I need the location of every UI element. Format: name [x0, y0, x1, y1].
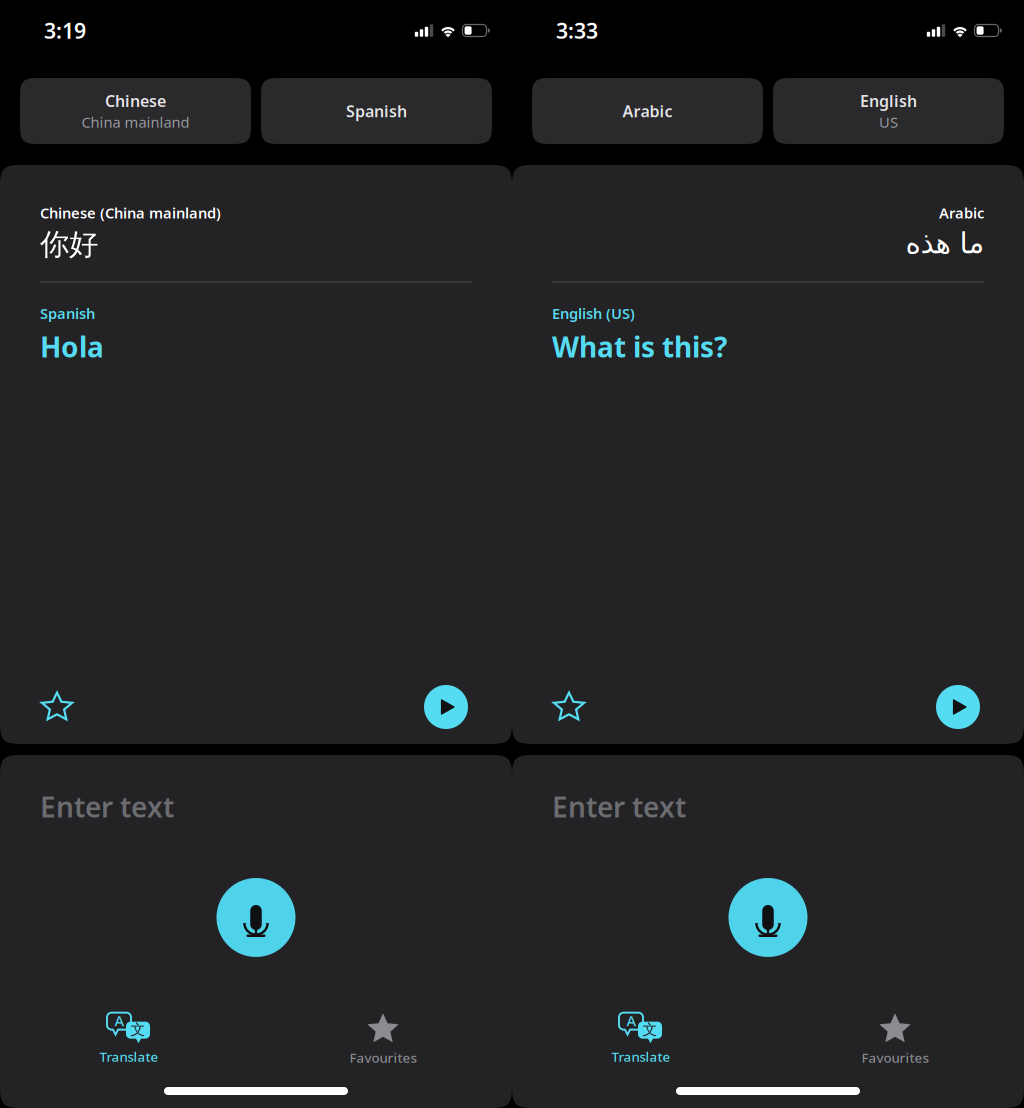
staticText: Spanish: [346, 100, 407, 122]
staticText: Favourites: [861, 1049, 928, 1066]
staticText: What is this?: [552, 328, 727, 365]
staticText: A: [626, 1011, 636, 1030]
staticText: Translate: [99, 1048, 158, 1065]
button[interactable]: Favourite: [31, 681, 83, 733]
button[interactable]: Enter text: [512, 757, 1024, 837]
button[interactable]: Enter text: [0, 757, 512, 837]
staticText: 3:19: [44, 16, 86, 45]
button[interactable]: A: [2, 1013, 256, 1065]
button[interactable]: A: [514, 1013, 768, 1065]
staticText: Spanish: [40, 303, 95, 323]
staticText: Enter text: [40, 788, 174, 825]
button[interactable]: Arabic: [532, 78, 763, 144]
button[interactable]: Play: [932, 681, 984, 733]
button[interactable]: Spanish: [261, 78, 492, 144]
staticText: Favourites: [349, 1049, 416, 1066]
staticText: Enter text: [552, 788, 686, 825]
staticText: Hola: [40, 328, 104, 365]
staticText: 文: [642, 1021, 657, 1039]
staticText: Chinese: [105, 90, 166, 111]
button[interactable]: Play: [420, 681, 472, 733]
staticText: A: [114, 1011, 124, 1030]
staticText: China mainland: [81, 112, 189, 132]
button[interactable]: Favourite: [543, 681, 595, 733]
staticText: English: [860, 90, 917, 111]
button[interactable]: English: [773, 78, 1004, 144]
staticText: English (US): [552, 303, 635, 323]
button[interactable]: Dictate: [216, 878, 295, 957]
staticText: US: [879, 112, 898, 132]
staticText: Translate: [611, 1048, 670, 1065]
staticText: 文: [130, 1021, 145, 1039]
button[interactable]: Favourites: [768, 1012, 1022, 1066]
staticText: ما هذه: [905, 226, 984, 260]
button[interactable]: Favourites: [256, 1012, 510, 1066]
staticText: Arabic: [622, 100, 672, 122]
button[interactable]: Dictate: [728, 878, 807, 957]
staticText: 3:33: [556, 16, 598, 45]
button[interactable]: Chinese: [20, 78, 251, 144]
staticText: 你好: [40, 226, 98, 262]
staticText: Arabic: [939, 203, 984, 222]
staticText: Chinese (China mainland): [40, 203, 221, 222]
